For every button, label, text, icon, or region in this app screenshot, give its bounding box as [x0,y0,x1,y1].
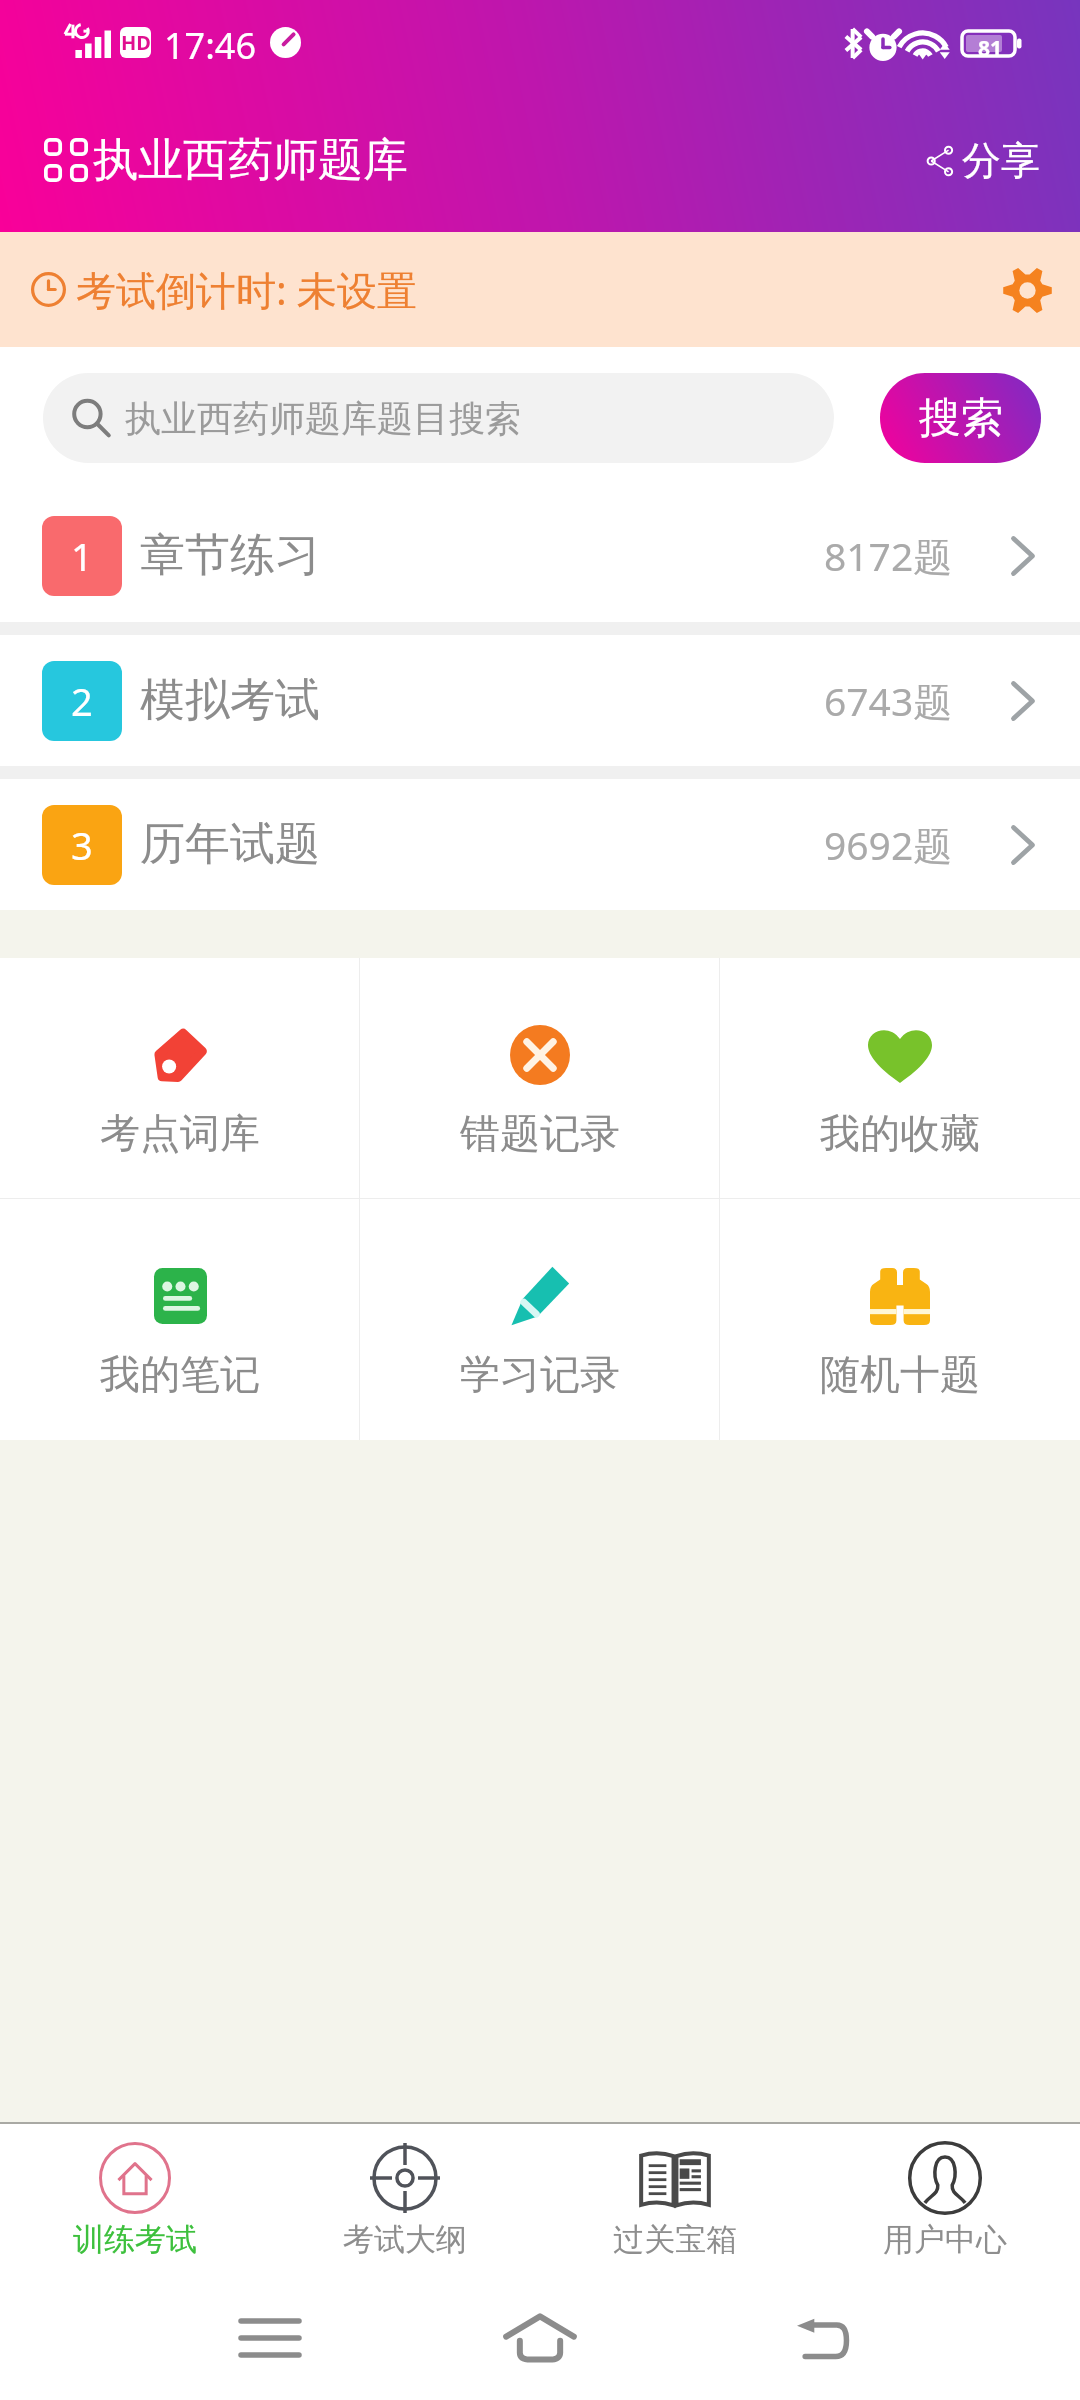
staticText: 我的收藏 [820,1108,980,1158]
button[interactable]: Recent apps [210,2300,330,2376]
staticText: 3 [71,819,93,871]
staticText: 执业西药师题库题目搜索 [125,396,521,441]
staticText: 过关宝箱 [613,2220,737,2259]
staticText: 分享 [962,136,1040,185]
button[interactable]: 学习记录 [360,1199,720,1440]
staticText: 用户中心 [883,2220,1007,2259]
staticText: 执业西药师题库 [93,132,408,189]
staticText: 我的笔记 [100,1349,260,1399]
staticText: 训练考试 [73,2220,197,2259]
button[interactable]: 随机十题 [720,1199,1080,1440]
button[interactable]: 过关宝箱 [540,2124,810,2280]
button[interactable]: 分享 [921,126,1044,195]
staticText: 模拟考试 [140,672,320,729]
button[interactable]: 考点词库 [0,958,360,1198]
button[interactable]: Back [762,2300,882,2376]
button[interactable]: 考试大纲 [270,2124,540,2280]
staticText: 考点词库 [100,1108,260,1158]
staticText: 81 [978,34,1003,63]
staticText: 2 [71,675,93,727]
staticText: 学习记录 [460,1349,620,1399]
button[interactable]: 2 [0,635,1080,766]
button[interactable]: 3 [0,779,1080,910]
staticText: 17:46 [164,21,257,70]
button[interactable]: 考试倒计时: 未设置 [0,232,1080,347]
staticText: 考试倒计时: 未设置 [76,262,418,317]
button[interactable]: 我的收藏 [720,958,1080,1198]
staticText: 历年试题 [140,816,320,873]
button[interactable]: 错题记录 [360,958,720,1198]
staticText: 9692题 [824,818,953,871]
staticText: HD [121,29,151,56]
staticText: 8172题 [824,529,953,582]
staticText: 搜索 [919,392,1003,445]
button[interactable]: 训练考试 [0,2124,270,2280]
button[interactable]: 我的笔记 [0,1199,360,1440]
button[interactable]: 1 [0,489,1080,622]
button[interactable]: Settings [993,256,1061,324]
button[interactable]: 执业西药师题库题目搜索 [43,373,834,463]
staticText: 错题记录 [460,1108,620,1158]
staticText: 6743题 [824,674,953,727]
button[interactable]: 用户中心 [810,2124,1080,2280]
button[interactable]: 搜索 [880,373,1041,463]
button[interactable]: Home [480,2300,600,2376]
staticText: 章节练习 [140,527,320,584]
staticText: 考试大纲 [343,2220,467,2259]
staticText: 随机十题 [820,1349,980,1399]
staticText: 1 [71,530,93,582]
